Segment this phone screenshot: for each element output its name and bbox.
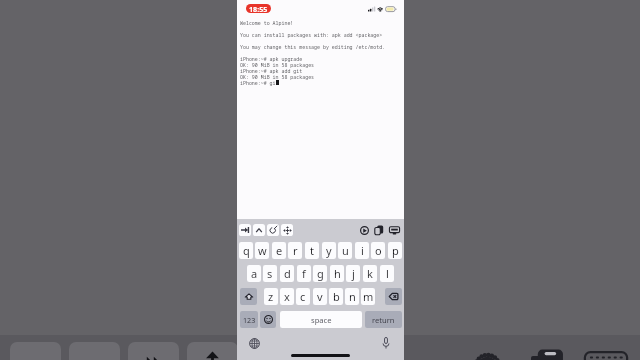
button[interactable]: t: [305, 242, 319, 259]
button[interactable]: p: [388, 242, 402, 259]
button[interactable]: v: [313, 288, 327, 305]
staticText: OK: 90 MiB in 58 packages: [240, 74, 315, 80]
button[interactable]: Keyboard: [584, 342, 628, 360]
button[interactable]: g: [313, 265, 327, 282]
button[interactable]: Paste: [373, 224, 385, 236]
staticText: s: [267, 266, 273, 281]
staticText: p: [392, 243, 399, 258]
button[interactable]: y: [322, 242, 336, 259]
staticText: x: [284, 289, 290, 304]
staticText: i: [361, 243, 364, 258]
button[interactable]: 123: [240, 311, 258, 328]
staticText: z: [268, 289, 274, 304]
button[interactable]: b: [329, 288, 343, 305]
button[interactable]: space: [280, 311, 362, 328]
staticText: iPhone:~# gi: [240, 80, 276, 86]
button[interactable]: Share: [187, 342, 238, 360]
staticText: t: [310, 243, 314, 258]
button[interactable]: e: [272, 242, 286, 259]
staticText: d: [284, 266, 291, 281]
button[interactable]: Shift: [240, 288, 257, 305]
button[interactable]: Run: [358, 224, 370, 236]
button[interactable]: return: [365, 311, 402, 328]
button[interactable]: l: [380, 265, 394, 282]
staticText: g: [317, 266, 324, 281]
staticText: return: [372, 315, 395, 325]
staticText: You may change this message by editing /…: [240, 44, 386, 50]
staticText: b: [333, 289, 340, 304]
button[interactable]: x: [280, 288, 294, 305]
button[interactable]: z: [264, 288, 278, 305]
staticText: k: [367, 266, 373, 281]
staticText: y: [326, 243, 332, 258]
button[interactable]: w: [255, 242, 269, 259]
staticText: You can install packages with: apk add <…: [240, 32, 383, 38]
staticText: space: [311, 315, 332, 325]
staticText: h: [334, 266, 341, 281]
button[interactable]: Dictation: [379, 336, 393, 350]
button[interactable]: Backspace: [385, 288, 402, 305]
button[interactable]: r: [288, 242, 302, 259]
staticText: v: [317, 289, 323, 304]
staticText: e: [276, 243, 283, 258]
button[interactable]: Arrows: [281, 224, 293, 236]
button[interactable]: u: [338, 242, 352, 259]
staticText: l: [386, 266, 389, 281]
staticText: Welcome to Alpine!: [240, 20, 294, 26]
button[interactable]: d: [280, 265, 294, 282]
button[interactable]: h: [330, 265, 344, 282]
staticText: 123: [243, 315, 256, 325]
button[interactable]: Escape: [267, 224, 279, 236]
button[interactable]: k: [363, 265, 377, 282]
button[interactable]: s: [263, 265, 277, 282]
staticText: q: [243, 243, 250, 258]
staticText: n: [349, 289, 356, 304]
button[interactable]: Next: [128, 342, 179, 360]
button[interactable]: i: [355, 242, 369, 259]
button[interactable]: j: [346, 265, 360, 282]
button[interactable]: Control: [253, 224, 265, 236]
button[interactable]: Settings: [470, 342, 505, 360]
button[interactable]: c: [296, 288, 310, 305]
staticText: f: [302, 266, 306, 281]
staticText: m: [363, 289, 374, 304]
button[interactable]: Display: [388, 224, 400, 236]
staticText: r: [293, 243, 298, 258]
button[interactable]: Change keyboard: [247, 336, 261, 350]
staticText: OK: 90 MiB in 58 packages: [240, 62, 315, 68]
staticText: 18:55: [249, 4, 268, 13]
staticText: a: [251, 266, 258, 281]
button[interactable]: Tab: [239, 224, 251, 236]
staticText: u: [342, 243, 349, 258]
staticText: j: [352, 266, 355, 281]
staticText: w: [258, 243, 267, 258]
button[interactable]: n: [345, 288, 359, 305]
button[interactable]: Emoji: [260, 311, 276, 328]
staticText: c: [300, 289, 306, 304]
button[interactable]: a: [247, 265, 261, 282]
button[interactable]: f: [297, 265, 311, 282]
button[interactable]: o: [371, 242, 385, 259]
button[interactable]: q: [239, 242, 253, 259]
staticText: o: [375, 243, 382, 258]
button[interactable]: Cast device: [531, 342, 565, 360]
staticText: iPhone:~# apk add git: [240, 68, 303, 74]
staticText: iPhone:~# apk upgrade: [240, 56, 303, 62]
button[interactable]: m: [361, 288, 375, 305]
